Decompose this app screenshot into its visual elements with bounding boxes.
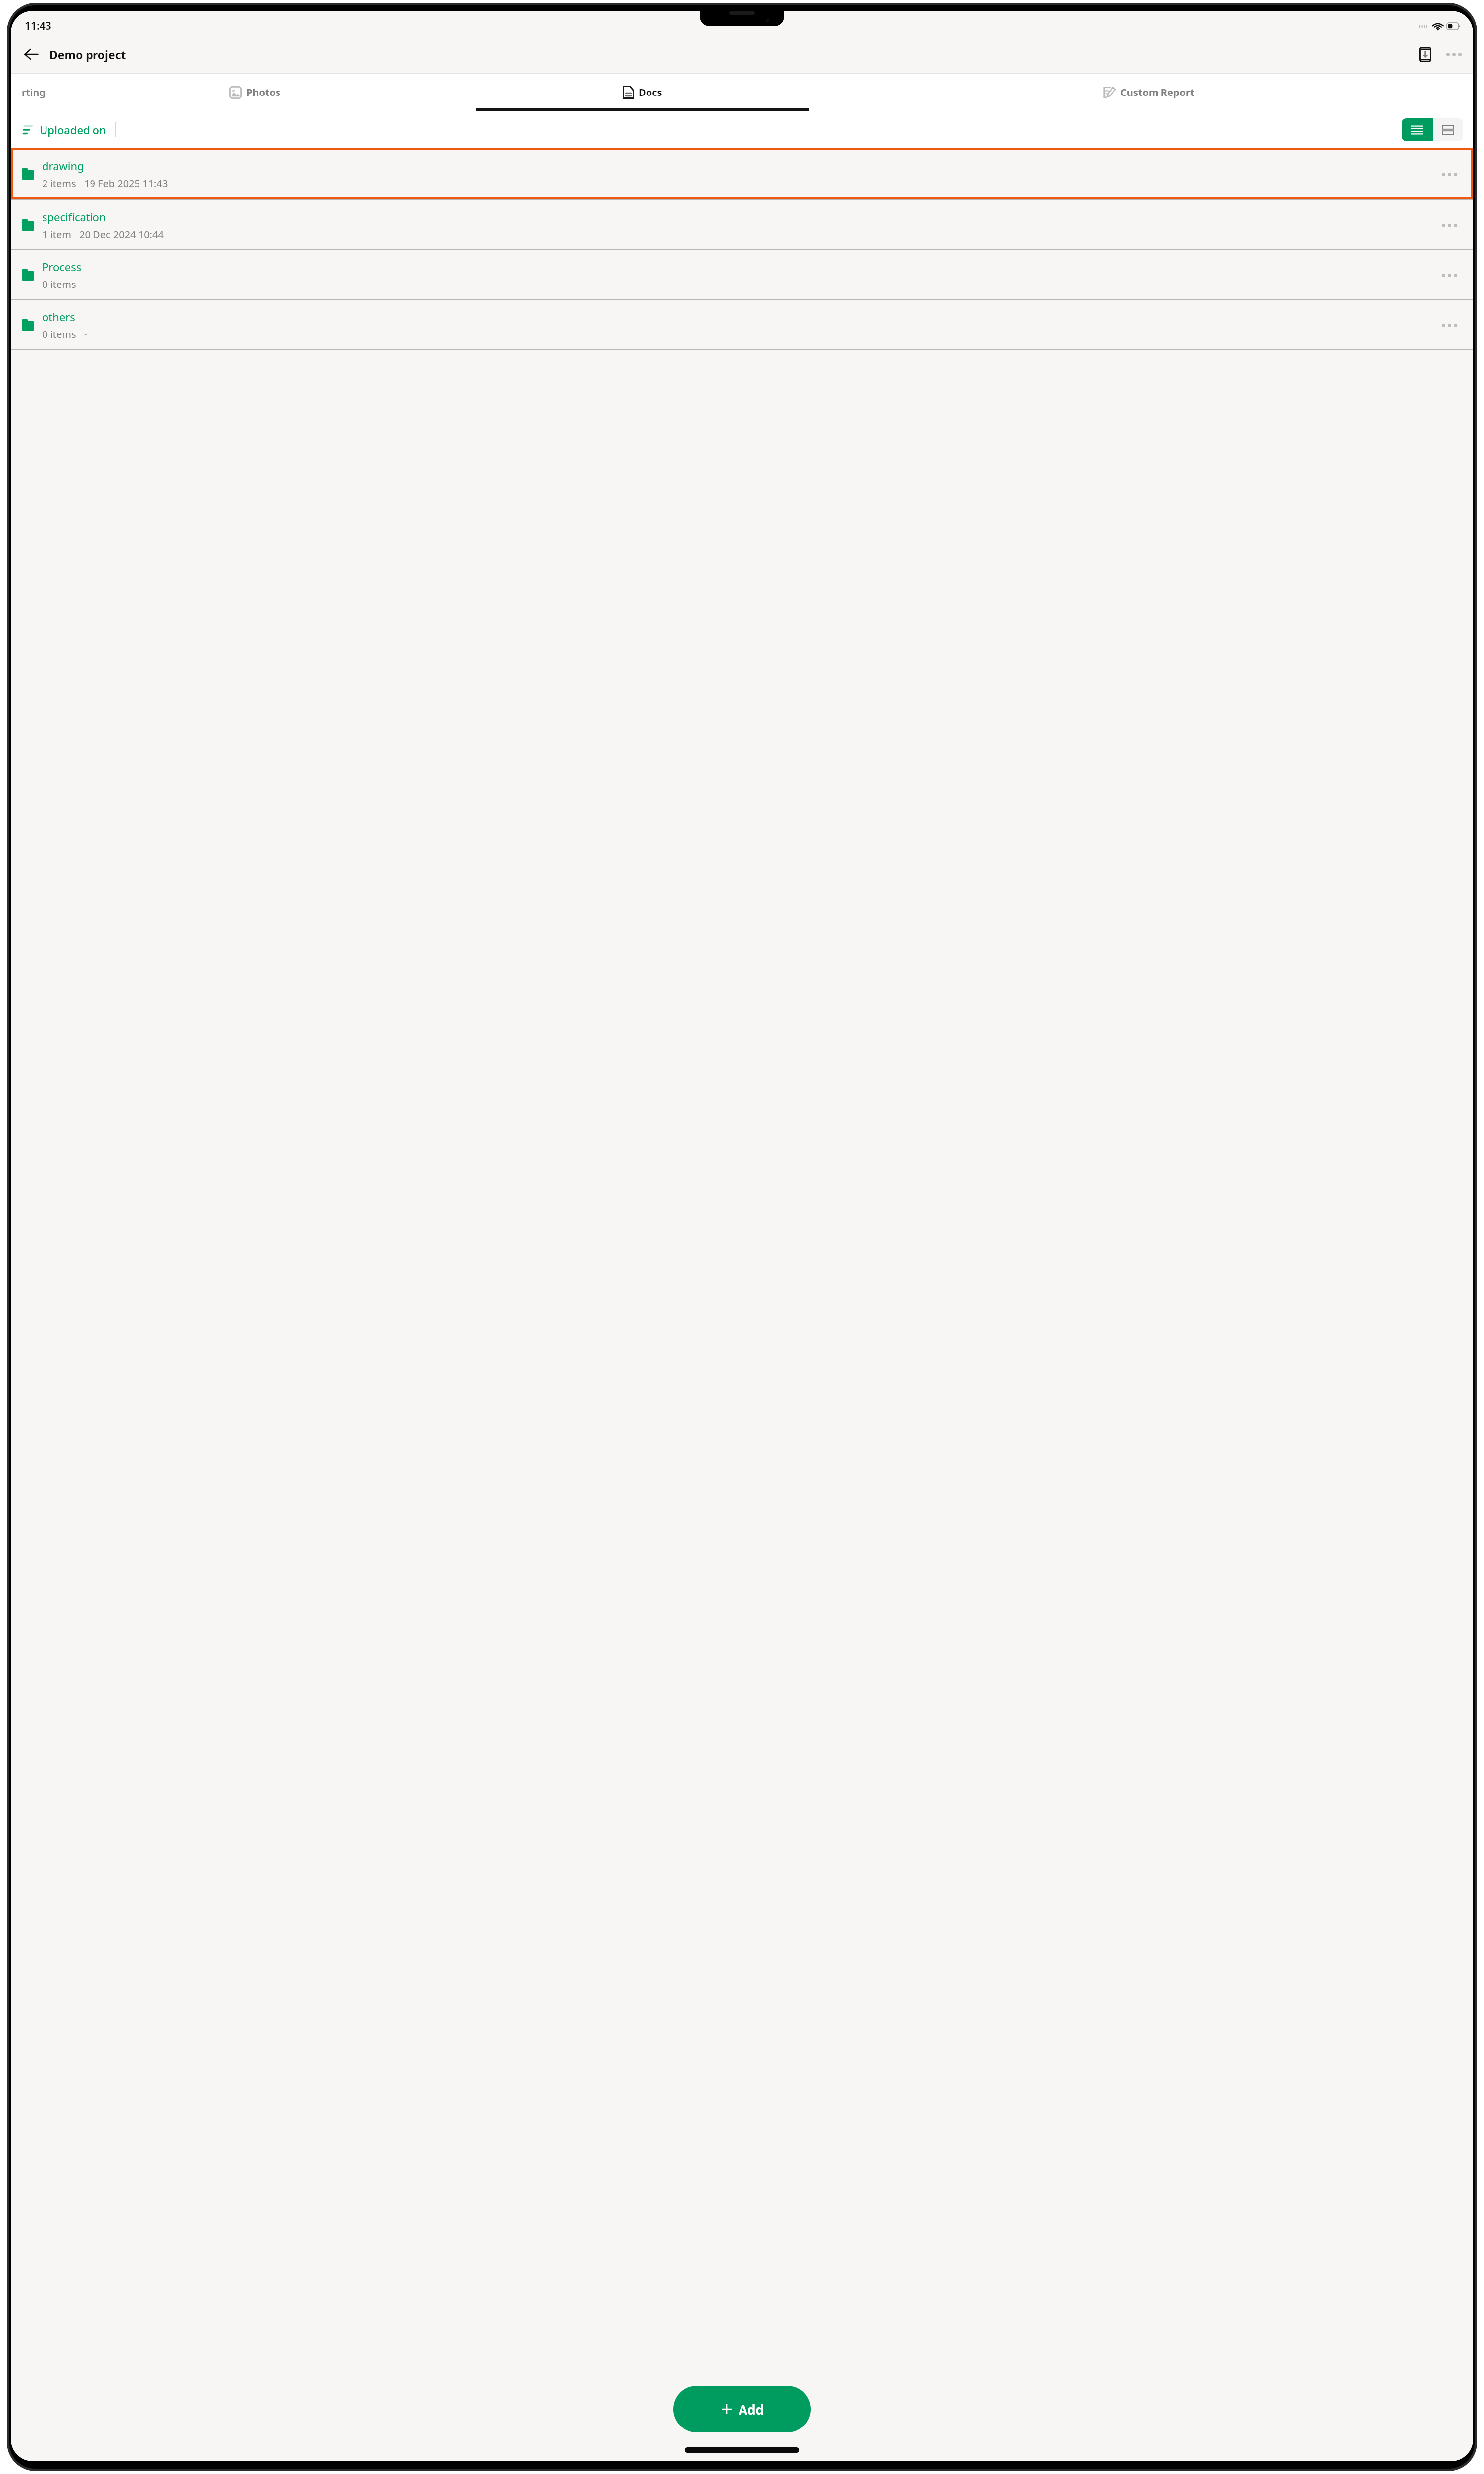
staticText: drawing xyxy=(42,158,84,173)
button[interactable]: Docs xyxy=(462,73,824,111)
staticText: Add xyxy=(739,2401,764,2418)
button[interactable]: Photos xyxy=(48,73,462,111)
button[interactable]: others xyxy=(11,300,1473,349)
staticText: 19 Feb 2025 11:43 xyxy=(84,177,168,190)
staticText: - xyxy=(84,328,88,341)
button[interactable]: rting xyxy=(11,73,48,111)
staticText: 11:43 xyxy=(25,19,51,33)
staticText: 0 items xyxy=(42,328,76,341)
staticText: others xyxy=(42,309,75,324)
staticText: specification xyxy=(42,209,106,224)
button[interactable]: Add xyxy=(673,2386,811,2432)
staticText: rting xyxy=(22,86,46,99)
button[interactable]: More options xyxy=(1439,40,1468,69)
staticText: - xyxy=(84,278,88,291)
staticText: 1 item xyxy=(42,228,71,241)
staticText: Docs xyxy=(639,86,662,99)
button[interactable]: specification xyxy=(11,200,1473,249)
button[interactable]: List view xyxy=(1402,118,1433,141)
staticText: Custom Report xyxy=(1120,86,1195,99)
staticText: Uploaded on xyxy=(40,122,106,137)
staticText: Photos xyxy=(246,86,281,99)
button[interactable]: Folder options xyxy=(1437,262,1462,288)
staticText: 0 items xyxy=(42,278,76,291)
button[interactable]: Folder options xyxy=(1437,161,1462,187)
staticText: Process xyxy=(42,259,82,274)
button[interactable]: Card view xyxy=(1433,118,1463,141)
button[interactable]: Process xyxy=(11,250,1473,299)
button[interactable]: Back xyxy=(17,40,46,69)
button[interactable]: drawing xyxy=(11,148,1473,199)
staticText: Demo project xyxy=(49,47,126,62)
staticText: 20 Dec 2024 10:44 xyxy=(79,228,164,241)
button[interactable]: Uploaded on xyxy=(21,122,116,137)
staticText: 2 items xyxy=(42,177,76,190)
button[interactable]: Custom Report xyxy=(824,73,1473,111)
button[interactable]: Folder options xyxy=(1437,312,1462,338)
button[interactable]: Download xyxy=(1411,40,1439,69)
button[interactable]: Folder options xyxy=(1437,212,1462,238)
